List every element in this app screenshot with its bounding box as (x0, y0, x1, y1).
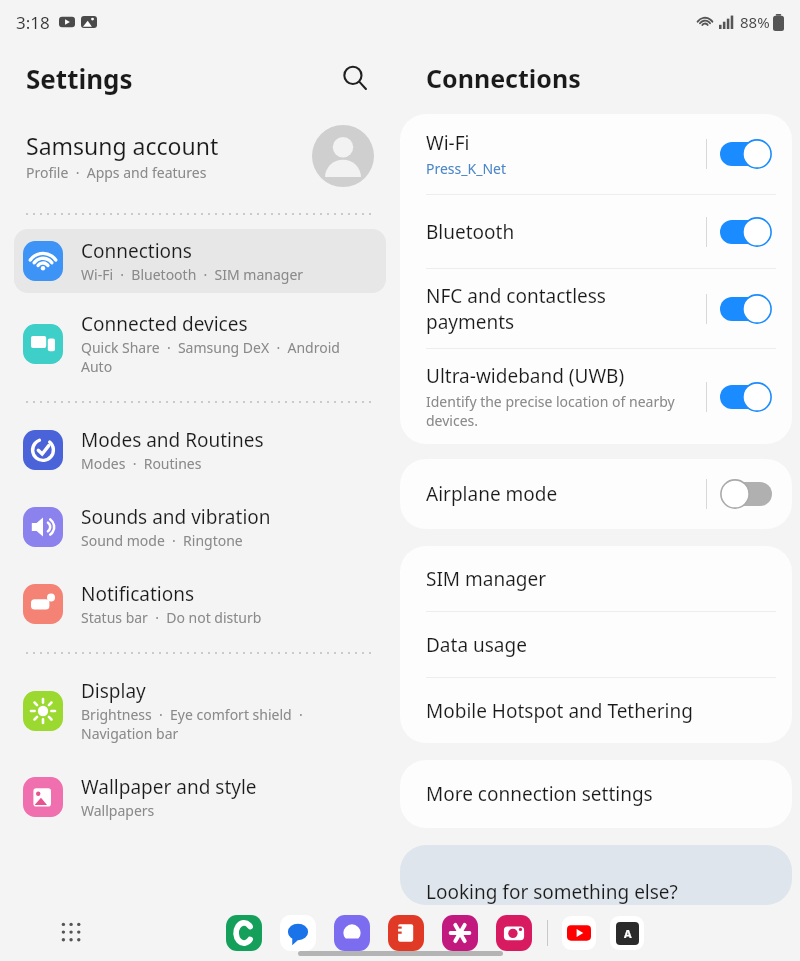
staticText: Brightness · Eye comfort shield · Naviga… (81, 705, 303, 743)
staticText: Wallpapers (81, 801, 155, 820)
staticText: Mobile Hotspot and Tethering (426, 698, 693, 724)
button[interactable]: Bluetooth (400, 195, 792, 268)
button[interactable]: Notifications (14, 572, 386, 636)
staticText: Wi-Fi (426, 130, 470, 156)
staticText: Settings (26, 61, 133, 96)
button[interactable]: NFC and contactless payments (720, 294, 772, 324)
button[interactable]: NFC and contactless payments (400, 269, 792, 348)
button[interactable]: Browser (333, 914, 371, 952)
button[interactable]: YouTube (562, 916, 596, 950)
staticText: Identify the precise location of nearby … (426, 392, 675, 430)
staticText: Modes · Routines (81, 454, 202, 473)
staticText: Notifications (81, 581, 195, 607)
staticText: Ultra-wideband (UWB) (426, 363, 625, 389)
button[interactable]: Wi-Fi (720, 139, 772, 169)
button[interactable]: Ultra-wideband (UWB) (400, 349, 792, 444)
staticText: Bluetooth (426, 219, 515, 245)
button[interactable]: Apps (55, 916, 89, 950)
button[interactable]: Camera (495, 914, 533, 952)
button[interactable]: Wallpaper and style (14, 765, 386, 829)
staticText: Sounds and vibration (81, 504, 271, 530)
staticText: Samsung account (26, 130, 219, 161)
staticText: Sound mode · Ringtone (81, 531, 243, 550)
button[interactable]: Phone (225, 914, 263, 952)
staticText: SIM manager (426, 566, 547, 592)
staticText: 3:18 (16, 11, 50, 34)
button[interactable]: Bluetooth (720, 217, 772, 247)
button[interactable]: Connections (14, 229, 386, 293)
button[interactable]: App (610, 916, 644, 950)
staticText: 88% (740, 12, 770, 32)
button[interactable]: Notes (387, 914, 425, 952)
staticText: More connection settings (426, 781, 653, 807)
staticText: Display (81, 678, 146, 704)
button[interactable]: Wi-Fi (400, 114, 792, 194)
staticText: Modes and Routines (81, 427, 264, 453)
staticText: Connections (81, 238, 192, 264)
button[interactable]: Connected devices (14, 302, 386, 385)
staticText: Status bar · Do not disturb (81, 608, 262, 627)
button[interactable]: Modes and Routines (14, 418, 386, 482)
staticText: Connected devices (81, 311, 248, 337)
staticText: NFC and contactless payments (426, 283, 606, 334)
button[interactable]: Messages (279, 914, 317, 952)
staticText: Data usage (426, 632, 527, 658)
staticText: Quick Share · Samsung DeX · Android Auto (81, 338, 340, 376)
staticText: A (624, 926, 632, 941)
button[interactable]: SIM manager (400, 546, 792, 611)
staticText: Profile · Apps and features (26, 163, 207, 182)
staticText: Press_K_Net (426, 159, 506, 178)
button[interactable]: Airplane mode (400, 459, 792, 529)
button[interactable]: Search (336, 59, 374, 97)
button[interactable]: More connection settings (400, 760, 792, 828)
button[interactable]: Ultra-wideband (UWB) (720, 382, 772, 412)
button[interactable]: Data usage (400, 612, 792, 677)
button[interactable]: Display (14, 669, 386, 752)
staticText: Wallpaper and style (81, 774, 257, 800)
staticText: Connections (426, 61, 581, 95)
button[interactable]: Looking for something else? (400, 845, 792, 905)
staticText: Wi-Fi · Bluetooth · SIM manager (81, 265, 304, 284)
button[interactable]: Sounds and vibration (14, 495, 386, 559)
button[interactable]: Samsung account (0, 112, 400, 200)
button[interactable]: Mobile Hotspot and Tethering (400, 678, 792, 743)
button[interactable]: Airplane mode (720, 479, 772, 509)
staticText: Airplane mode (426, 481, 558, 507)
staticText: Looking for something else? (426, 879, 678, 905)
button[interactable]: Photos (441, 914, 479, 952)
